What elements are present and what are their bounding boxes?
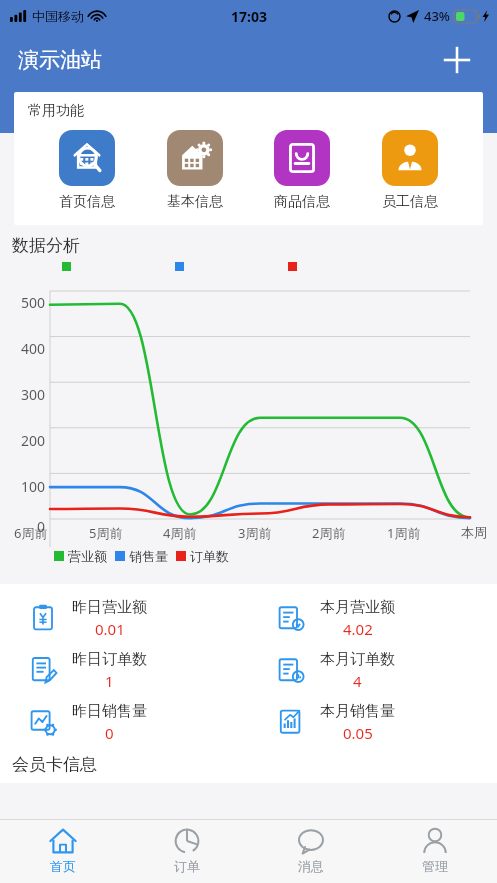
staticText: 400 xyxy=(21,339,46,358)
staticText: 管理 xyxy=(422,858,448,874)
button[interactable]: 昨日销售量 xyxy=(0,696,248,748)
button[interactable]: 昨日营业额 xyxy=(0,592,248,644)
staticText: 员工信息 xyxy=(382,193,438,211)
staticText: 本月订单数 xyxy=(320,650,395,669)
staticText: 首页信息 xyxy=(59,193,115,211)
staticText: 500 xyxy=(21,293,46,312)
staticText: 0 xyxy=(37,517,46,536)
button[interactable]: 订单 xyxy=(125,820,249,883)
staticText: 4周前 xyxy=(163,524,197,542)
staticText: 100 xyxy=(21,477,46,496)
staticText: 本周 xyxy=(461,524,487,540)
staticText: 商品信息 xyxy=(274,193,330,211)
staticText: 4.02 xyxy=(343,619,373,639)
staticText: 3周前 xyxy=(238,524,272,542)
button[interactable]: 管理 xyxy=(373,820,497,883)
staticText: 数据分析 xyxy=(12,235,80,256)
button[interactable]: 首页信息 xyxy=(53,128,121,213)
staticText: 本月销售量 xyxy=(320,702,395,721)
staticText: 1周前 xyxy=(387,524,421,542)
button[interactable]: 员工信息 xyxy=(376,128,444,213)
button[interactable]: 基本信息 xyxy=(161,128,229,213)
button[interactable]: 昨日订单数 xyxy=(0,644,248,696)
staticText: 基本信息 xyxy=(167,193,223,211)
staticText: 订单数 xyxy=(190,548,229,564)
staticText: 消息 xyxy=(298,858,324,874)
staticText: 43% xyxy=(424,7,450,25)
staticText: 4 xyxy=(353,671,362,691)
staticText: 2周前 xyxy=(312,524,346,542)
staticText: 中国移动 xyxy=(32,8,84,24)
button[interactable]: 本月营业额 xyxy=(248,592,497,644)
button[interactable]: 消息 xyxy=(249,820,373,883)
button[interactable]: 本月销售量 xyxy=(248,696,497,748)
staticText: 销售量 xyxy=(129,548,168,564)
staticText: 演示油站 xyxy=(18,47,102,73)
staticText: 300 xyxy=(21,385,46,404)
staticText: 常用功能 xyxy=(28,102,84,120)
button[interactable]: 本月订单数 xyxy=(248,644,497,696)
staticText: 200 xyxy=(21,431,46,450)
button[interactable]: 首页 xyxy=(0,820,125,883)
staticText: 17:03 xyxy=(231,7,267,26)
staticText: 首页 xyxy=(50,858,76,874)
staticText: 昨日销售量 xyxy=(72,702,147,721)
staticText: 6周前 xyxy=(14,524,48,542)
staticText: 昨日订单数 xyxy=(72,650,147,669)
staticText: 1 xyxy=(105,671,114,691)
button[interactable]: 商品信息 xyxy=(268,128,336,213)
staticText: 营业额 xyxy=(68,548,107,564)
staticText: 昨日营业额 xyxy=(72,598,147,617)
staticText: 0 xyxy=(105,723,114,743)
button[interactable]: Add xyxy=(435,38,479,82)
staticText: 会员卡信息 xyxy=(12,754,97,775)
staticText: 0.01 xyxy=(95,619,125,639)
staticText: 0.05 xyxy=(343,723,373,743)
staticText: 订单 xyxy=(174,858,200,874)
staticText: 本月营业额 xyxy=(320,598,395,617)
staticText: 5周前 xyxy=(89,524,123,542)
